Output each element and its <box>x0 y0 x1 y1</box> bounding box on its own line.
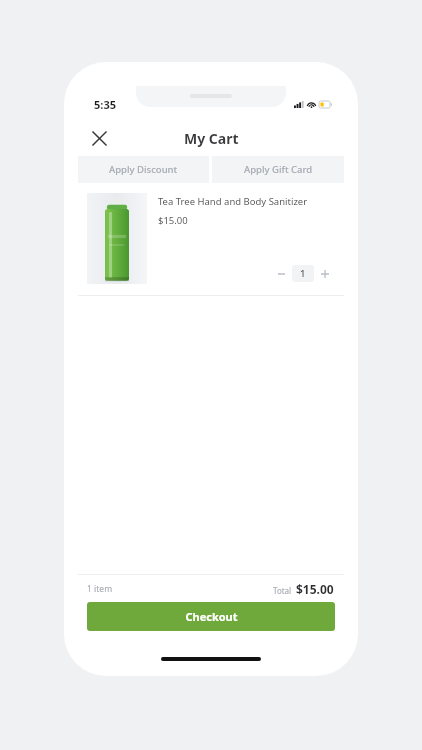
staticText: Tea Tree Hand and Body Sanitizer <box>158 195 308 208</box>
staticText: 5:35 <box>94 97 116 112</box>
staticText: Apply Gift Card <box>244 163 313 176</box>
staticText: $15.00 <box>158 214 188 227</box>
staticText: 1 <box>300 267 306 280</box>
staticText: Total <box>273 585 292 596</box>
button[interactable]: Close cart <box>85 124 113 152</box>
staticText: Apply Discount <box>109 163 178 176</box>
button[interactable]: Apply Discount <box>78 156 209 183</box>
staticText: 1 item <box>87 583 113 595</box>
button[interactable]: Increase quantity <box>316 265 333 282</box>
button[interactable]: 1 <box>292 265 314 282</box>
button[interactable]: Decrease quantity <box>273 265 290 282</box>
staticText: $15.00 <box>296 581 334 597</box>
button[interactable]: Checkout <box>87 602 335 631</box>
button[interactable]: Apply Gift Card <box>212 156 344 183</box>
staticText: My Cart <box>184 129 239 148</box>
staticText: Checkout <box>185 609 238 624</box>
button[interactable]: Tea Tree Hand and Body Sanitizer <box>78 191 344 295</box>
